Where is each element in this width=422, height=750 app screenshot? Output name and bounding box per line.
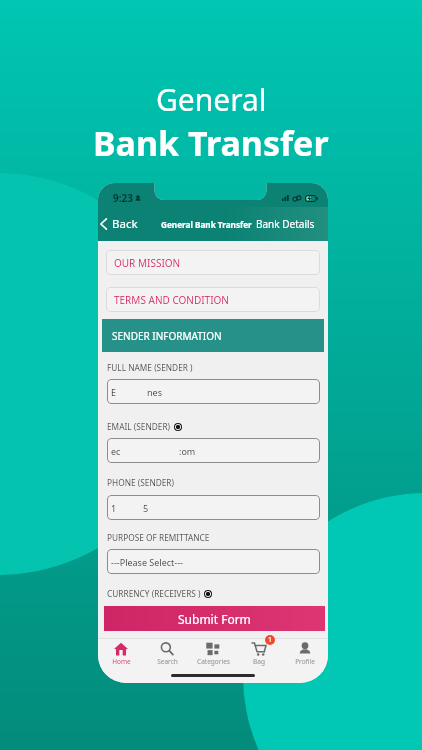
button[interactable]: 1 [236, 639, 282, 666]
staticText: Bank Details [256, 217, 315, 231]
staticText: CURRENCY (RECEIVERS ) [107, 588, 201, 599]
staticText: E [111, 386, 117, 398]
button[interactable]: SENDER INFORMATION [102, 319, 324, 352]
button[interactable]: E [107, 379, 320, 404]
staticText: PHONE (SENDER) [107, 477, 175, 488]
button[interactable]: Home [98, 639, 144, 666]
staticText: PURPOSE OF REMITTANCE [107, 532, 210, 543]
button[interactable]: 1 [107, 495, 320, 520]
button[interactable]: ec [107, 438, 320, 463]
button[interactable]: OUR MISSION [106, 250, 320, 275]
staticText: Submit Form [178, 611, 251, 627]
staticText: TERMS AND CONDITION [114, 293, 229, 307]
staticText: OUR MISSION [114, 256, 181, 270]
staticText: FULL NAME (SENDER ) [107, 362, 193, 373]
other: Help [204, 590, 212, 598]
other: Help [174, 423, 182, 431]
staticText: 1 [268, 635, 273, 645]
staticText: ---Please Select--- [111, 556, 183, 568]
staticText: Search [157, 657, 178, 666]
button[interactable]: Back [98, 211, 142, 237]
staticText: General [156, 79, 267, 120]
staticText: 1 [111, 502, 117, 514]
button[interactable]: Profile [282, 639, 328, 666]
staticText: nes [147, 386, 162, 398]
button[interactable]: Submit Form [104, 606, 325, 631]
staticText: Back [112, 216, 138, 232]
staticText: EMAIL (SENDER) [107, 421, 171, 432]
staticText: Bag [253, 657, 265, 666]
button[interactable]: Search [144, 639, 190, 666]
button[interactable]: ---Please Select--- [107, 549, 320, 574]
staticText: 9:23 [113, 191, 133, 205]
staticText: SENDER INFORMATION [112, 329, 222, 343]
staticText: 5 [143, 502, 149, 514]
staticText: Home [112, 657, 131, 666]
staticText: Profile [295, 657, 315, 666]
button[interactable]: TERMS AND CONDITION [106, 287, 320, 312]
staticText: ec [111, 445, 121, 457]
staticText: General Bank Transfer [161, 219, 252, 230]
button[interactable]: Categories [190, 639, 236, 666]
staticText: :om [179, 445, 196, 457]
staticText: Bank Transfer [93, 120, 329, 166]
staticText: Categories [197, 657, 230, 666]
